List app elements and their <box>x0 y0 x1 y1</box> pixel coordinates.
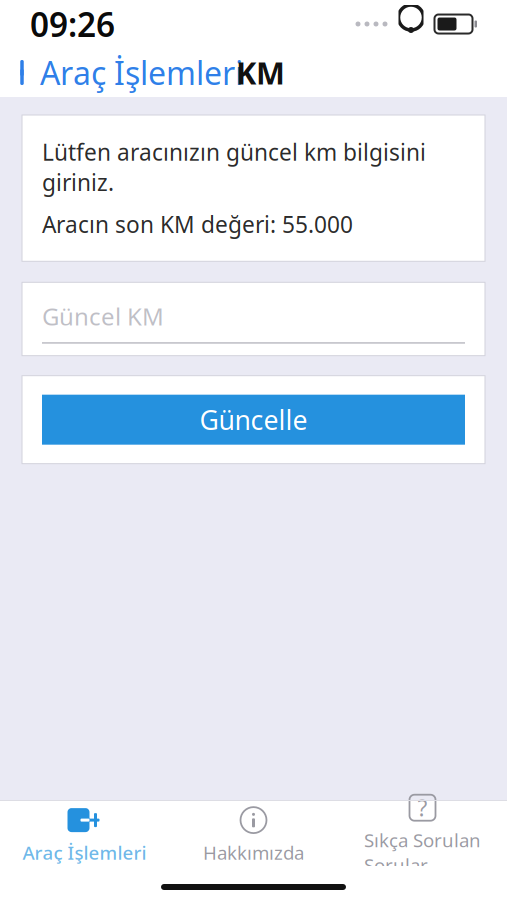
staticText: KM <box>236 52 285 93</box>
staticText: Lütfen aracınızın güncel km bilgisini gi… <box>42 137 426 197</box>
staticText: ? <box>417 793 427 823</box>
button[interactable]: Araç İşlemleri <box>0 799 169 873</box>
button[interactable]: Araç İşlemleri <box>0 43 243 102</box>
staticText: Güncel KM <box>42 300 164 332</box>
staticText: Araç İşlemleri <box>22 840 146 865</box>
button[interactable]: Hakkımızda <box>169 799 338 873</box>
staticText: Araç İşlemleri <box>40 51 243 94</box>
button[interactable]: ? <box>338 787 507 885</box>
staticText: Hakkımızda <box>203 840 304 865</box>
button[interactable]: Güncelle <box>42 395 465 445</box>
staticText: 09:26 <box>30 2 115 46</box>
staticText: Güncelle <box>199 402 307 437</box>
staticText: Aracın son KM değeri: 55.000 <box>42 209 353 239</box>
staticText: Sıkça Sorulan Sorular <box>364 828 481 877</box>
